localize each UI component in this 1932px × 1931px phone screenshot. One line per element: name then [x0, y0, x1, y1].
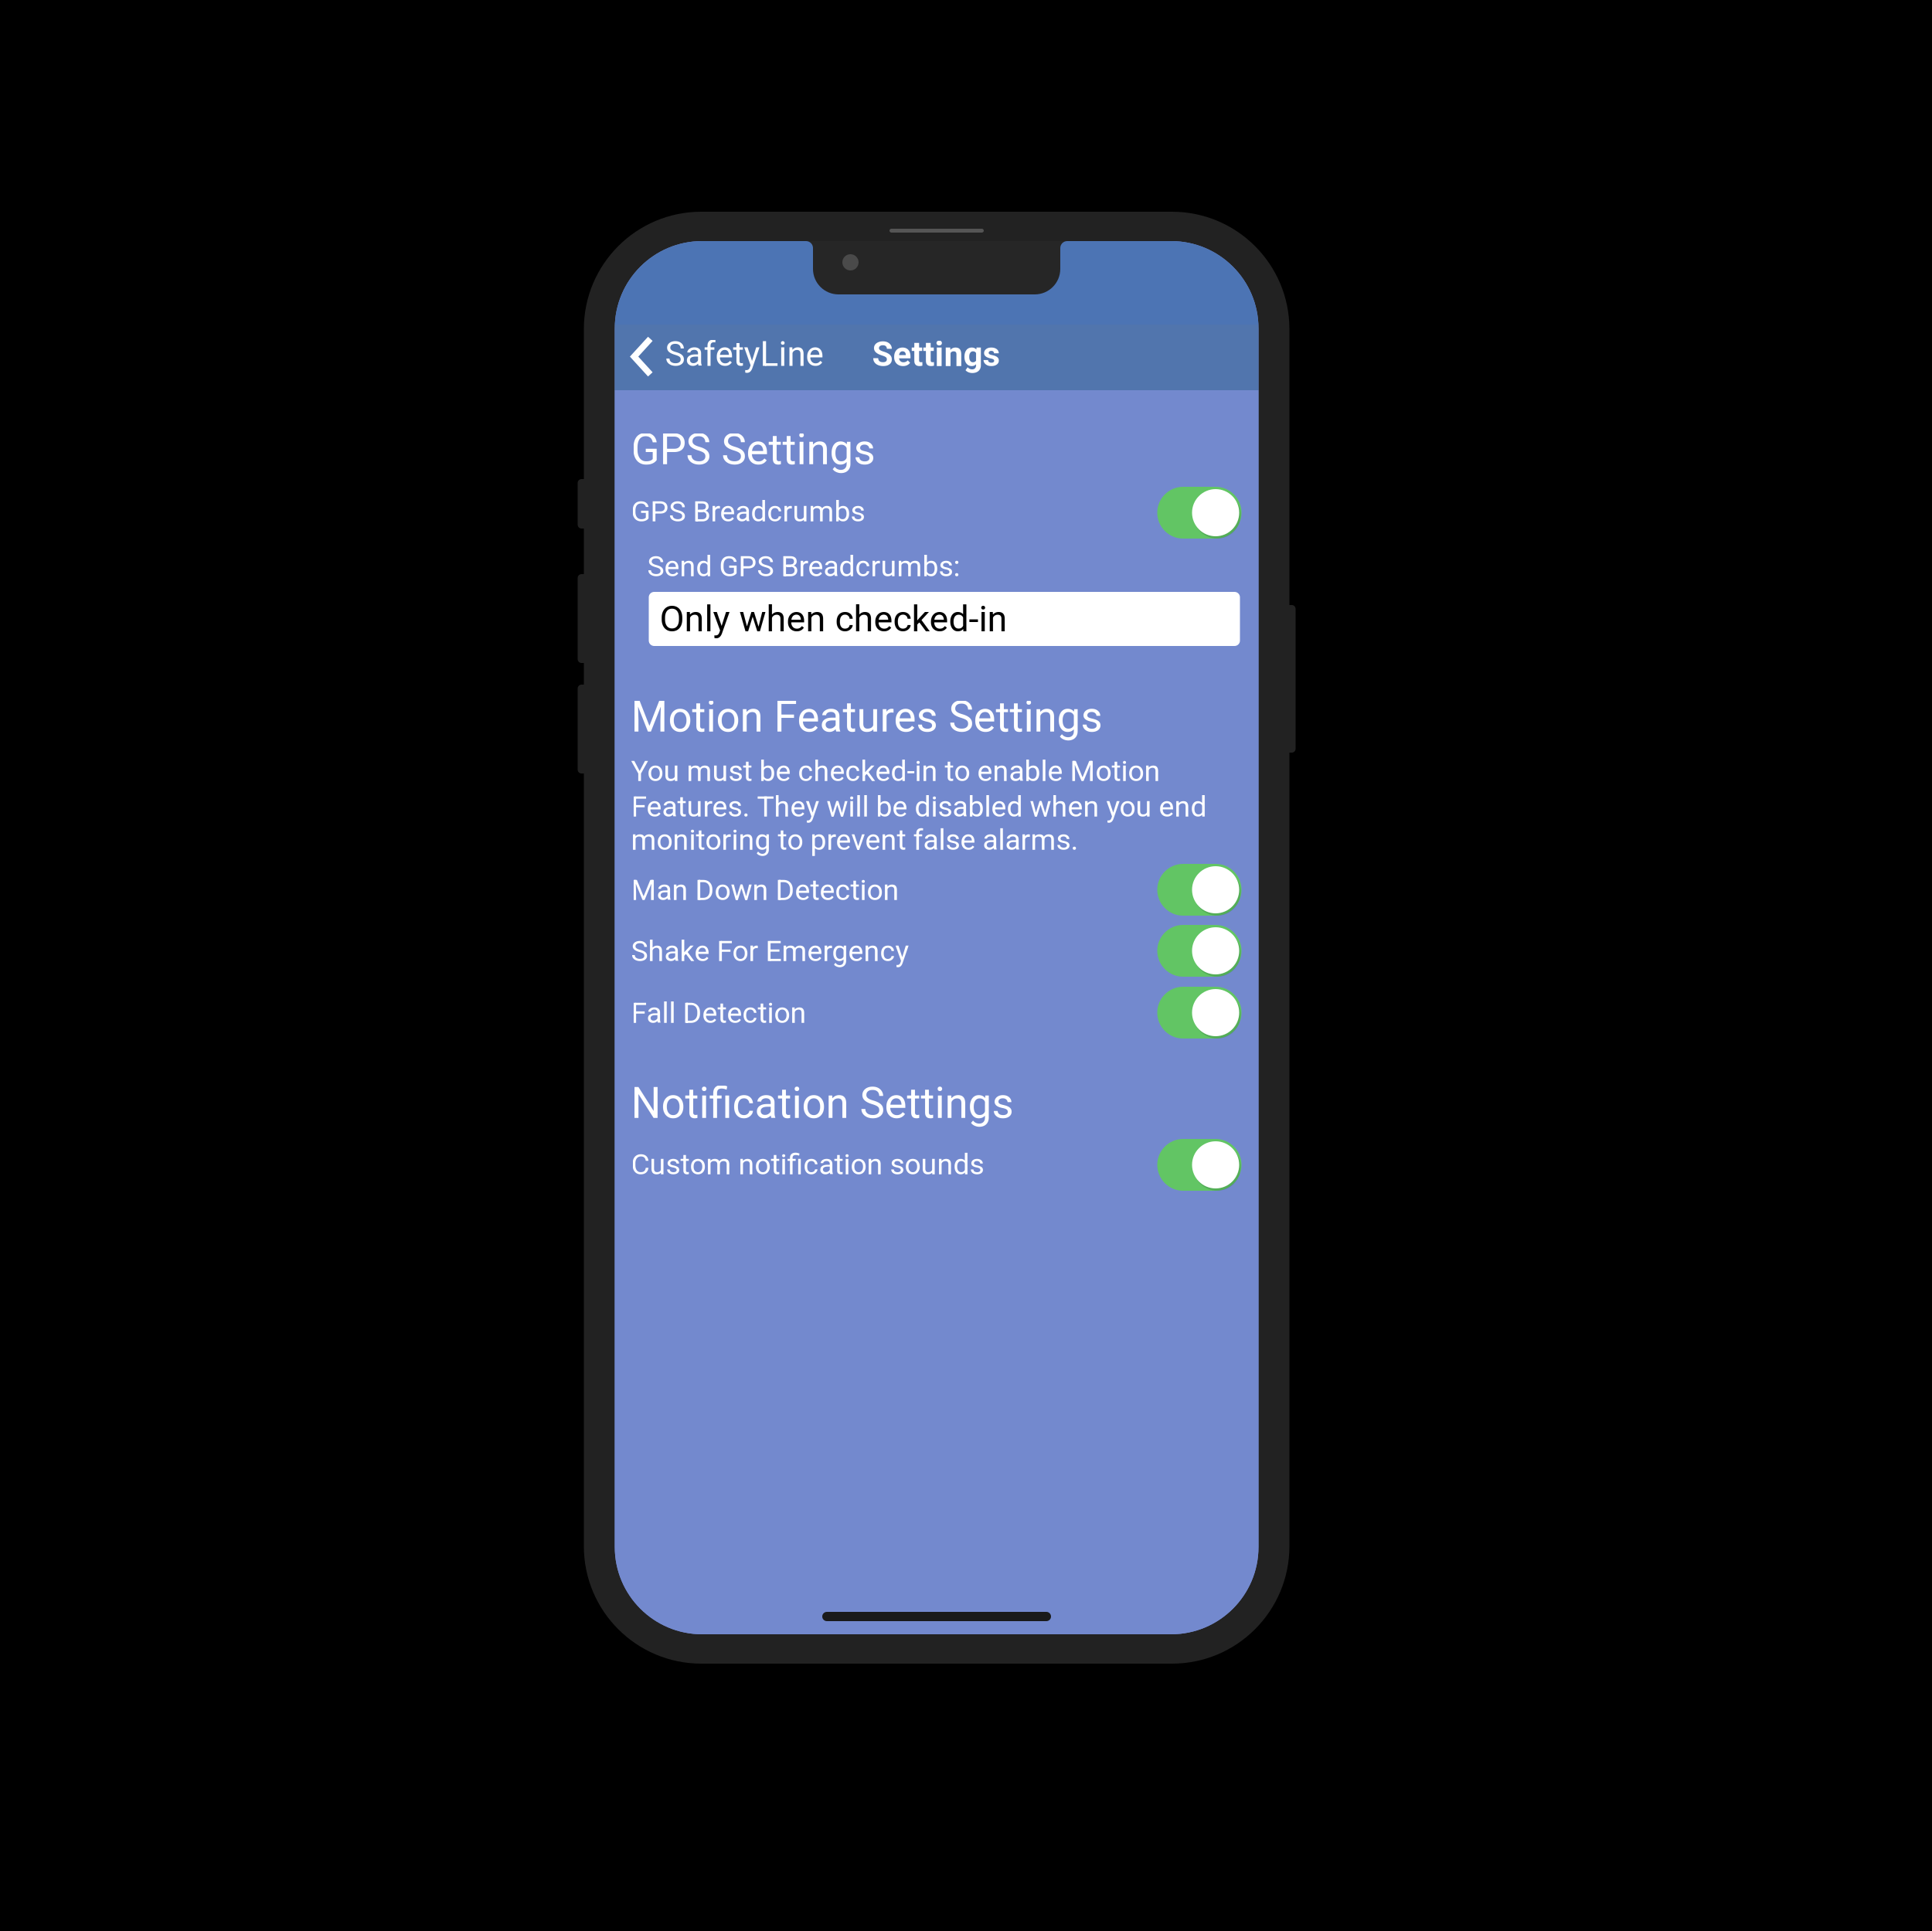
staticText: Notification Settings — [631, 1079, 1014, 1128]
button[interactable]: Man Down Detection — [615, 859, 1259, 920]
button[interactable]: Only when checked-in — [649, 592, 1240, 646]
staticText: GPS Breadcrumbs — [631, 495, 865, 528]
staticText: Only when checked-in — [660, 598, 1007, 640]
staticText: Shake For Emergency — [631, 934, 909, 968]
button[interactable]: Fall Detection — [615, 982, 1259, 1043]
staticText: Features. They will be disabled when you… — [631, 790, 1207, 823]
button[interactable]: Back to SafetyLine — [615, 325, 831, 390]
staticText: You must be checked-in to enable Motion — [631, 754, 1160, 788]
staticText: Custom notification sounds — [631, 1147, 984, 1181]
button[interactable]: Custom notification sounds — [615, 1134, 1259, 1195]
staticText: monitoring to prevent false alarms. — [631, 823, 1078, 857]
staticText: Motion Features Settings — [631, 692, 1102, 742]
button[interactable]: Shake For Emergency — [615, 920, 1259, 981]
staticText: SafetyLine — [665, 334, 823, 374]
staticText: Man Down Detection — [631, 873, 899, 907]
staticText: GPS Settings — [631, 425, 875, 475]
staticText: Send GPS Breadcrumbs: — [647, 549, 960, 583]
staticText: Fall Detection — [631, 996, 806, 1030]
staticText: Settings — [872, 335, 1000, 374]
button[interactable]: GPS Breadcrumbs — [615, 482, 1259, 543]
